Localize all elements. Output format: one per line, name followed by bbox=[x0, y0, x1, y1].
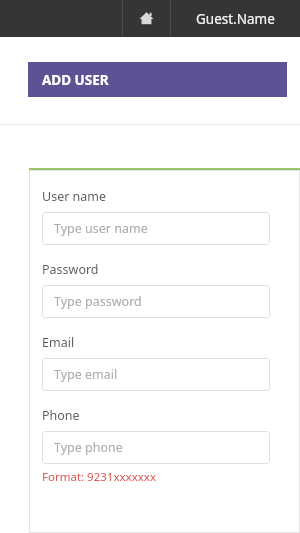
button[interactable]: Type email bbox=[42, 358, 270, 391]
staticText: User name bbox=[42, 188, 107, 205]
staticText: Guest.Name bbox=[196, 10, 275, 28]
staticText: Type user name bbox=[54, 220, 148, 237]
button[interactable]: Type password bbox=[42, 285, 270, 318]
staticText: Format: 9231xxxxxxx bbox=[42, 469, 156, 485]
staticText: ADD USER bbox=[42, 71, 109, 89]
button[interactable]: Home bbox=[123, 0, 170, 37]
staticText: Password bbox=[42, 261, 99, 278]
staticText: Type password bbox=[54, 293, 142, 310]
button[interactable]: Guest.Name bbox=[171, 0, 300, 37]
staticText: Phone bbox=[42, 407, 80, 424]
staticText: Email bbox=[42, 334, 75, 351]
staticText: Type email bbox=[54, 366, 118, 383]
button[interactable]: ADD USER bbox=[28, 62, 287, 97]
button[interactable]: Type phone bbox=[42, 431, 270, 464]
button[interactable]: Type user name bbox=[42, 212, 270, 245]
staticText: Type phone bbox=[54, 439, 123, 456]
